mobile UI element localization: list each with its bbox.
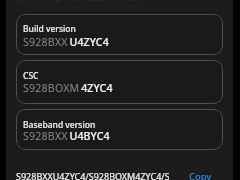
button[interactable]: Baseband version — [16, 109, 223, 150]
staticText: S928BXXU4ZYC4/S928BOXM4ZYC4/S928BXXU4BYC… — [16, 170, 169, 180]
button[interactable]: CSC — [16, 60, 223, 104]
staticText: S928BOXM 4ZYC4 — [23, 81, 113, 95]
staticText: S928BXX U4ZYC4 — [23, 35, 109, 49]
staticText: Baseband version — [23, 119, 96, 131]
staticText: Build version — [23, 23, 76, 35]
button[interactable]: Build version — [16, 14, 223, 55]
staticText: as it is improved test firmware. — [16, 0, 147, 3]
staticText: Copy — [189, 170, 212, 180]
staticText: S928BXX U4BYC4 — [23, 129, 110, 143]
button[interactable]: Copy — [188, 168, 213, 180]
staticText: CSC — [23, 70, 39, 82]
